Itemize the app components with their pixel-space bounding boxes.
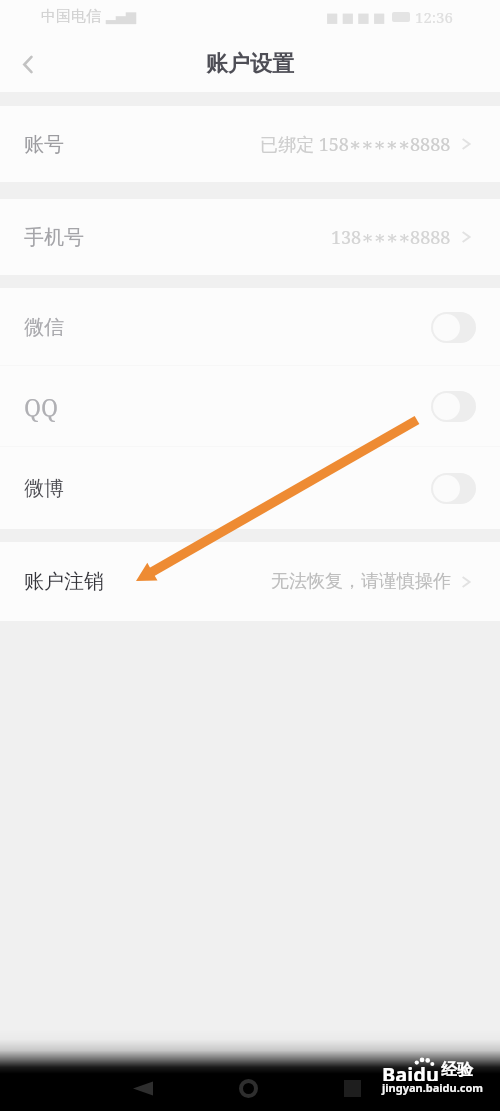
button[interactable]: 微信 bbox=[0, 288, 500, 366]
staticText: QQ bbox=[24, 391, 59, 422]
staticText: 手机号 bbox=[24, 225, 84, 250]
button[interactable]: 账号 bbox=[0, 106, 500, 182]
button[interactable]: Back bbox=[121, 1073, 165, 1103]
staticText: 账户设置 bbox=[206, 50, 294, 78]
staticText: 138∗∗∗∗8888 bbox=[331, 225, 451, 250]
staticText: 已绑定 158∗∗∗∗∗8888 bbox=[260, 132, 451, 157]
button[interactable]: QQ bbox=[0, 366, 500, 447]
button[interactable]: Recent apps bbox=[330, 1073, 374, 1103]
staticText: 中国电信 bbox=[41, 7, 101, 26]
staticText: jingyan.baidu.com bbox=[382, 1080, 484, 1095]
button[interactable]: Toggle 微博 bbox=[431, 473, 476, 504]
staticText: ■ ■ ■ ■ bbox=[326, 8, 386, 26]
button[interactable]: Toggle 微信 bbox=[431, 312, 476, 343]
staticText: 无法恢复，请谨慎操作 bbox=[271, 570, 451, 593]
button[interactable]: 微博 bbox=[0, 447, 500, 529]
staticText: 账户注销 bbox=[24, 569, 104, 594]
staticText: 12:36 bbox=[415, 7, 453, 27]
staticText: 经验 bbox=[441, 1060, 473, 1080]
staticText: 微信 bbox=[24, 315, 64, 340]
staticText: Baidu bbox=[382, 1061, 439, 1081]
staticText: 微博 bbox=[24, 476, 64, 501]
button[interactable]: Home bbox=[226, 1073, 270, 1103]
button[interactable]: Baidu Jingyan bbox=[382, 1061, 484, 1096]
button[interactable]: Back bbox=[0, 36, 56, 92]
button[interactable]: Toggle QQ bbox=[431, 391, 476, 422]
staticText: ▂▄▆ bbox=[106, 9, 136, 24]
staticText: 账号 bbox=[24, 132, 64, 157]
button[interactable]: 手机号 bbox=[0, 199, 500, 275]
button[interactable]: 账户注销 bbox=[0, 542, 500, 621]
